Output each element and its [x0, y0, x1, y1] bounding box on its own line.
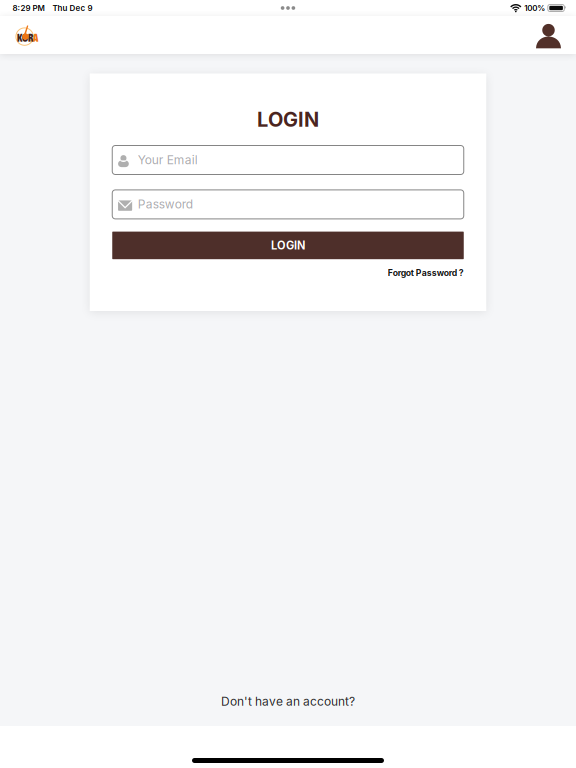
staticText: Thu Dec 9 [52, 3, 92, 13]
staticText: LOGIN [271, 239, 305, 252]
button[interactable]: Forgot Password ? [388, 268, 464, 278]
button[interactable]: Your Email [112, 145, 464, 174]
staticText: 8:29 PM [12, 3, 44, 13]
staticText: A [33, 32, 38, 44]
staticText: O [22, 32, 28, 44]
button[interactable]: LOGIN [112, 232, 464, 259]
staticText: Password [138, 197, 193, 211]
staticText: LOGIN [257, 107, 319, 132]
staticText: 100% [524, 3, 545, 13]
staticText: Forgot Password ? [388, 268, 464, 278]
staticText: R [28, 32, 33, 44]
staticText: Don't have an account? [221, 694, 355, 709]
button[interactable]: Account [526, 19, 576, 51]
staticText: K [17, 32, 22, 44]
staticText: Your Email [138, 152, 198, 167]
button[interactable]: KORA home [0, 16, 48, 54]
button[interactable]: Password [112, 190, 464, 219]
